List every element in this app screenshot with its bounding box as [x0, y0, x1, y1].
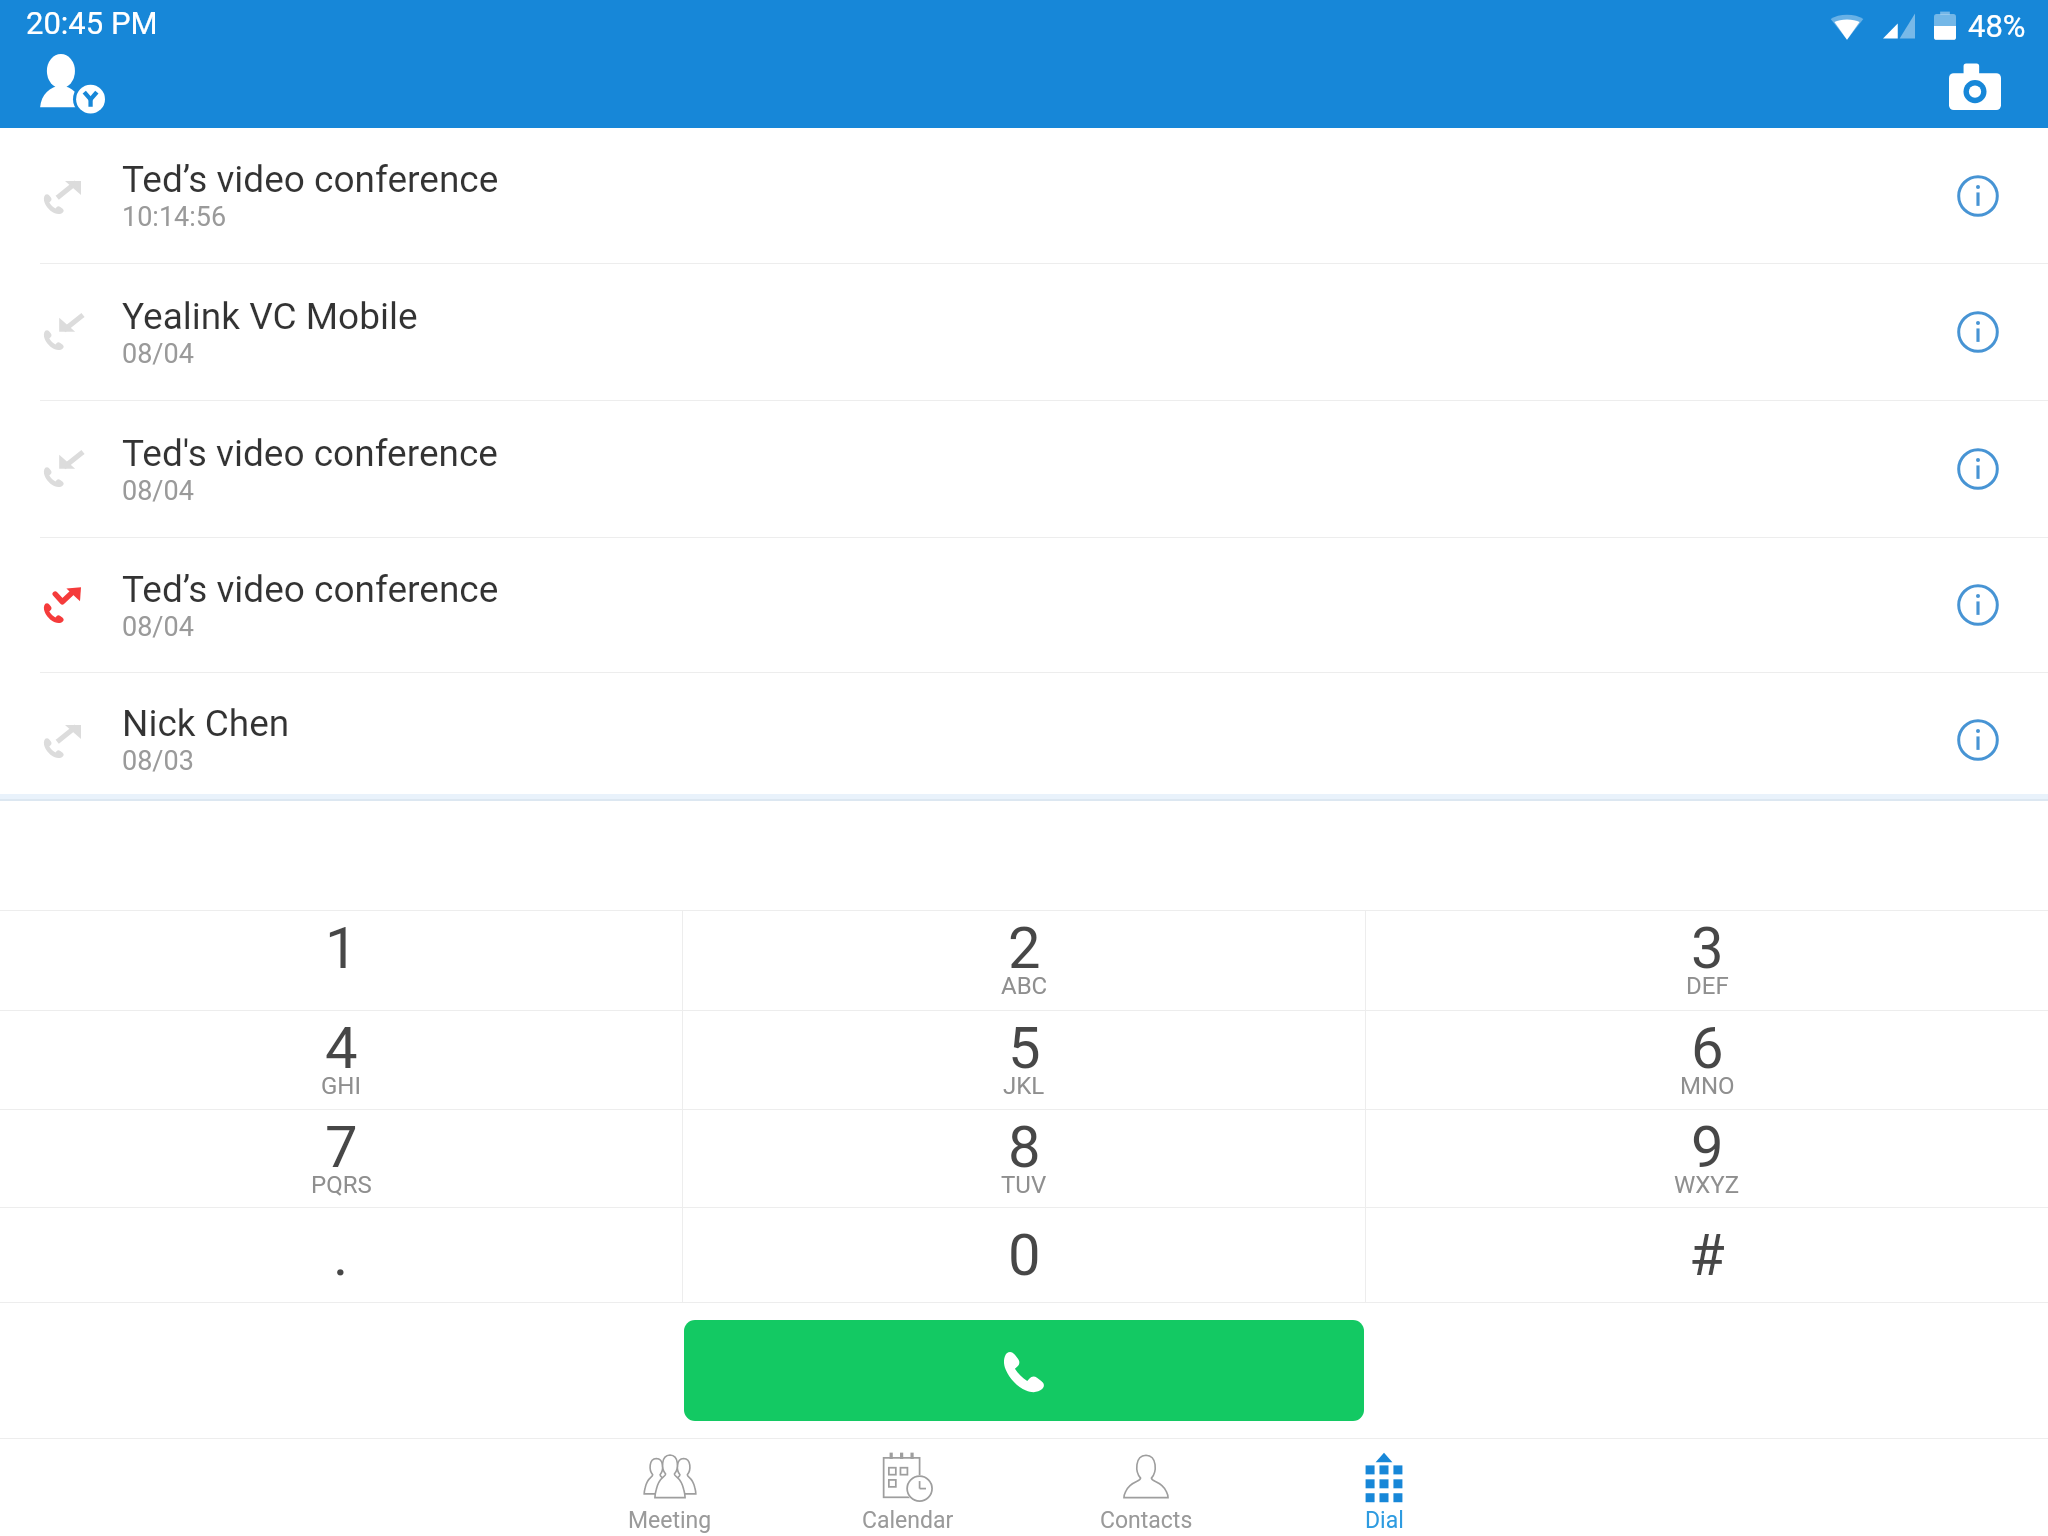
staticText: 3 — [1691, 914, 1724, 982]
staticText: Contacts — [1100, 1507, 1193, 1534]
button[interactable]: 2 — [683, 911, 1365, 1010]
staticText: 08/04 — [122, 475, 194, 507]
button[interactable]: Camera — [1949, 61, 2001, 110]
staticText: Ted's video conference — [122, 432, 498, 475]
button[interactable]: Ted's video conference — [0, 401, 2048, 537]
staticText: Ted’s video conference — [122, 158, 499, 201]
button[interactable]: 6 — [1366, 1011, 2048, 1109]
staticText: 48% — [1968, 8, 2026, 44]
button[interactable]: Dial — [1265, 1439, 1503, 1536]
button[interactable]: Call details — [1907, 679, 2048, 800]
staticText: Meeting — [628, 1507, 712, 1534]
button[interactable]: Ted’s video conference — [0, 128, 2048, 263]
button[interactable]: 1 — [0, 911, 682, 1010]
staticText: ABC — [1001, 972, 1048, 1000]
button[interactable]: Call details — [1907, 538, 2048, 672]
staticText: DEF — [1686, 972, 1729, 1000]
staticText: 5 — [1008, 1014, 1041, 1082]
staticText: Dial — [1365, 1507, 1404, 1534]
staticText: GHI — [321, 1072, 361, 1100]
staticText: MNO — [1680, 1072, 1735, 1100]
button[interactable]: Calendar — [789, 1439, 1027, 1536]
button[interactable]: 0 — [683, 1208, 1365, 1302]
staticText: 4 — [325, 1014, 358, 1082]
staticText: 1 — [325, 914, 358, 982]
staticText: Nick Chen — [122, 702, 290, 745]
staticText: 10:14:56 — [122, 201, 227, 233]
staticText: 8 — [1008, 1113, 1041, 1181]
button[interactable]: 4 — [0, 1011, 682, 1109]
button[interactable]: Call — [684, 1320, 1364, 1421]
staticText: 9 — [1691, 1113, 1724, 1181]
staticText: JKL — [1003, 1072, 1045, 1100]
button[interactable]: Call details — [1907, 128, 2048, 263]
button[interactable]: 3 — [1366, 911, 2048, 1010]
button[interactable]: Call details — [1907, 401, 2048, 537]
button[interactable]: 7 — [0, 1110, 682, 1207]
staticText: 0 — [1008, 1221, 1041, 1289]
staticText: Ted’s video conference — [122, 568, 499, 611]
button[interactable]: Contacts — [1027, 1439, 1265, 1536]
staticText: PQRS — [311, 1171, 372, 1199]
button[interactable]: . — [0, 1208, 682, 1302]
button[interactable]: 8 — [683, 1110, 1365, 1207]
staticText: Yealink VC Mobile — [122, 295, 418, 338]
button[interactable]: Call details — [1907, 264, 2048, 400]
staticText: 2 — [1008, 914, 1041, 982]
staticText: 08/04 — [122, 338, 194, 370]
button[interactable]: Nick Chen — [0, 673, 2048, 794]
staticText: Calendar — [862, 1507, 954, 1534]
button[interactable]: 5 — [683, 1011, 1365, 1109]
button[interactable]: Meeting — [551, 1439, 789, 1536]
staticText: . — [333, 1221, 349, 1289]
button[interactable]: 9 — [1366, 1110, 2048, 1207]
staticText: TUV — [1001, 1171, 1047, 1199]
button[interactable]: # — [1366, 1208, 2048, 1302]
staticText: 20:45 PM — [26, 5, 158, 41]
button[interactable]: Yealink VC Mobile — [0, 264, 2048, 400]
button[interactable]: Ted’s video conference — [0, 538, 2048, 672]
staticText: 7 — [325, 1113, 358, 1181]
staticText: 6 — [1691, 1014, 1724, 1082]
staticText: 08/04 — [122, 611, 194, 643]
staticText: # — [1689, 1221, 1725, 1289]
staticText: 08/03 — [122, 745, 194, 777]
button[interactable]: Account — [24, 50, 128, 128]
staticText: WXYZ — [1674, 1171, 1740, 1199]
